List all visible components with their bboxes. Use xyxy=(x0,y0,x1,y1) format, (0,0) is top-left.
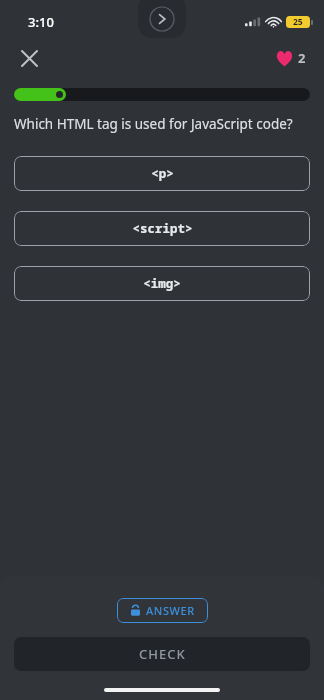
staticText: Which HTML tag is used for JavaScript co… xyxy=(14,115,293,133)
button[interactable]: <img> xyxy=(14,266,310,301)
button[interactable]: 2 xyxy=(272,45,310,71)
button[interactable]: Close xyxy=(14,43,44,73)
staticText: 2 xyxy=(298,49,306,67)
staticText: <p> xyxy=(151,165,174,182)
button[interactable]: ANSWER xyxy=(117,598,208,623)
button[interactable]: <p> xyxy=(14,156,310,191)
staticText: 25 xyxy=(293,16,303,28)
staticText: CHECK xyxy=(139,645,186,663)
button[interactable]: <script> xyxy=(14,211,310,246)
staticText: <script> xyxy=(132,220,193,237)
staticText: ANSWER xyxy=(146,603,195,618)
staticText: <img> xyxy=(143,275,181,292)
button[interactable]: CHECK xyxy=(14,637,310,671)
staticText: 3:10 xyxy=(28,13,54,31)
